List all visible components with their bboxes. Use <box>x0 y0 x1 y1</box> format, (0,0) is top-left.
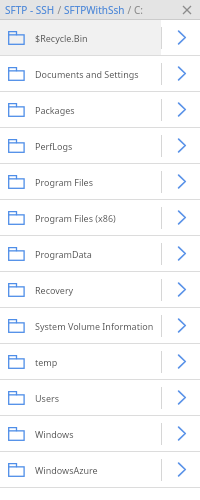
button[interactable]: WindowsAzure <box>0 452 161 487</box>
button[interactable]: Open System Volume Information <box>162 308 200 343</box>
button[interactable]: Open Recovery <box>162 272 200 307</box>
button[interactable]: Open Users <box>162 380 200 415</box>
staticText: WindowsAzure <box>35 464 98 476</box>
button[interactable]: C: <box>134 3 143 17</box>
staticText: temp <box>35 356 58 368</box>
button[interactable]: Windows <box>0 416 161 451</box>
button[interactable]: Users <box>0 380 161 415</box>
button[interactable]: Open Documents and Settings <box>162 56 200 91</box>
staticText: Documents and Settings <box>35 68 139 80</box>
button[interactable]: Program Files (x86) <box>0 200 161 235</box>
button[interactable]: SFTP - SSH <box>5 3 55 17</box>
staticText: Program Files <box>35 176 94 188</box>
staticText: PerfLogs <box>35 140 73 152</box>
button[interactable]: System Volume Information <box>0 308 161 343</box>
button[interactable]: PerfLogs <box>0 128 161 163</box>
button[interactable]: Open Packages <box>162 92 200 127</box>
staticText: Windows <box>35 428 74 440</box>
button[interactable]: Close <box>179 2 195 18</box>
button[interactable]: Open Program Files (x86) <box>162 200 200 235</box>
button[interactable]: Recovery <box>0 272 161 307</box>
staticText: Program Files (x86) <box>35 212 116 224</box>
button[interactable]: Open WindowsAzure <box>162 452 200 487</box>
staticText: Packages <box>35 104 75 116</box>
staticText: Recovery <box>35 284 74 296</box>
staticText: / <box>125 3 134 17</box>
staticText: / <box>55 3 64 17</box>
staticText: ProgramData <box>35 248 92 260</box>
button[interactable]: Open PerfLogs <box>162 128 200 163</box>
button[interactable]: Open temp <box>162 344 200 379</box>
staticText: Users <box>35 392 59 404</box>
button[interactable]: Program Files <box>0 164 161 199</box>
staticText: System Volume Information <box>35 320 154 332</box>
button[interactable]: SFTPWithSsh <box>64 3 125 17</box>
button[interactable]: Open Windows <box>162 416 200 451</box>
button[interactable]: Packages <box>0 92 161 127</box>
button[interactable]: ProgramData <box>0 236 161 271</box>
staticText: $Recycle.Bin <box>35 32 88 44</box>
button[interactable]: Open Program Files <box>162 164 200 199</box>
button[interactable]: $Recycle.Bin <box>0 20 161 55</box>
button[interactable]: Open ProgramData <box>162 236 200 271</box>
button[interactable]: Documents and Settings <box>0 56 161 91</box>
button[interactable]: Open $Recycle.Bin <box>162 20 200 55</box>
button[interactable]: temp <box>0 344 161 379</box>
